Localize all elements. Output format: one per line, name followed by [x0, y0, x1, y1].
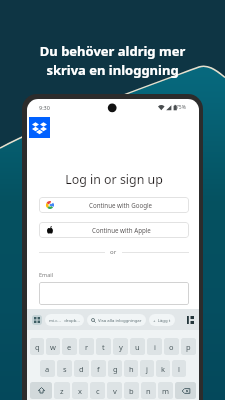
staticText: m [162, 386, 170, 396]
staticText: or [110, 248, 117, 256]
staticText: p [186, 342, 191, 352]
button[interactable]: t [96, 338, 111, 355]
staticText: + Lägg t [153, 317, 171, 323]
button[interactable]: j [140, 360, 154, 377]
staticText: Continue with Apple [92, 226, 151, 234]
button[interactable]: s [57, 360, 72, 377]
staticText: Du behöver aldrig mer skriva en inloggni… [0, 42, 225, 79]
staticText: Log in or sign up [28, 171, 199, 188]
button[interactable]: Backspace [175, 382, 196, 399]
staticText: r [85, 342, 89, 352]
button[interactable]: mi.c... dropb... [49, 314, 80, 326]
staticText: c [96, 386, 100, 396]
button[interactable]: l [172, 360, 186, 377]
button[interactable]: v [107, 382, 122, 399]
button[interactable]: b [124, 382, 139, 399]
button[interactable]: k [156, 360, 170, 377]
staticText: x [78, 386, 82, 396]
button[interactable]: q [30, 338, 44, 355]
staticText: g [113, 364, 118, 374]
button[interactable]: w [46, 338, 60, 355]
button[interactable]: n [141, 382, 156, 399]
staticText: Continue with Google [89, 201, 153, 209]
staticText: u [135, 342, 140, 352]
staticText: b [129, 386, 134, 396]
staticText: v [113, 386, 117, 396]
button[interactable] [39, 282, 189, 305]
button[interactable]: p [181, 338, 196, 355]
button[interactable]: u [130, 338, 145, 355]
button[interactable]: h [124, 360, 138, 377]
button[interactable]: g [108, 360, 122, 377]
staticText: 75% [176, 104, 186, 111]
staticText: 9:30 [39, 104, 50, 111]
staticText: n [146, 386, 151, 396]
staticText: q [35, 342, 40, 352]
button[interactable]: x [72, 382, 88, 399]
staticText: o [169, 342, 174, 352]
staticText: h [129, 364, 134, 374]
other: Keyboard switcher [187, 316, 194, 324]
staticText: f [97, 364, 100, 374]
button[interactable]: i [147, 338, 162, 355]
button[interactable]: Visa alla inloggningar [91, 314, 142, 326]
button[interactable]: + Lägg t [153, 314, 171, 326]
staticText: s [63, 364, 67, 374]
button[interactable]: Continue with Apple [39, 222, 189, 238]
staticText: d [79, 364, 84, 374]
staticText: l [178, 364, 180, 374]
staticText: e [67, 342, 72, 352]
button[interactable]: z [54, 382, 70, 399]
staticText: j [146, 364, 148, 374]
button[interactable]: Shift [30, 382, 52, 399]
staticText: t [102, 342, 105, 352]
button[interactable]: m [158, 382, 173, 399]
staticText: Visa alla inloggningar [98, 317, 142, 323]
button[interactable]: f [91, 360, 106, 377]
staticText: y [119, 342, 123, 352]
button[interactable]: e [62, 338, 77, 355]
staticText: z [60, 386, 64, 396]
button[interactable]: y [113, 338, 128, 355]
button[interactable]: r [79, 338, 94, 355]
button[interactable]: Dropbox [29, 117, 50, 138]
button[interactable]: Autofill [32, 315, 42, 325]
staticText: Email [39, 271, 54, 278]
button[interactable]: Continue with Google [39, 197, 189, 213]
button[interactable]: d [74, 360, 89, 377]
button[interactable]: a [40, 360, 55, 377]
staticText: w [50, 342, 56, 352]
staticText: i [154, 342, 156, 352]
staticText: mi.c... dropb... [49, 317, 80, 323]
button[interactable]: c [90, 382, 105, 399]
staticText: k [161, 364, 166, 374]
staticText: a [45, 364, 50, 374]
button[interactable]: o [164, 338, 179, 355]
